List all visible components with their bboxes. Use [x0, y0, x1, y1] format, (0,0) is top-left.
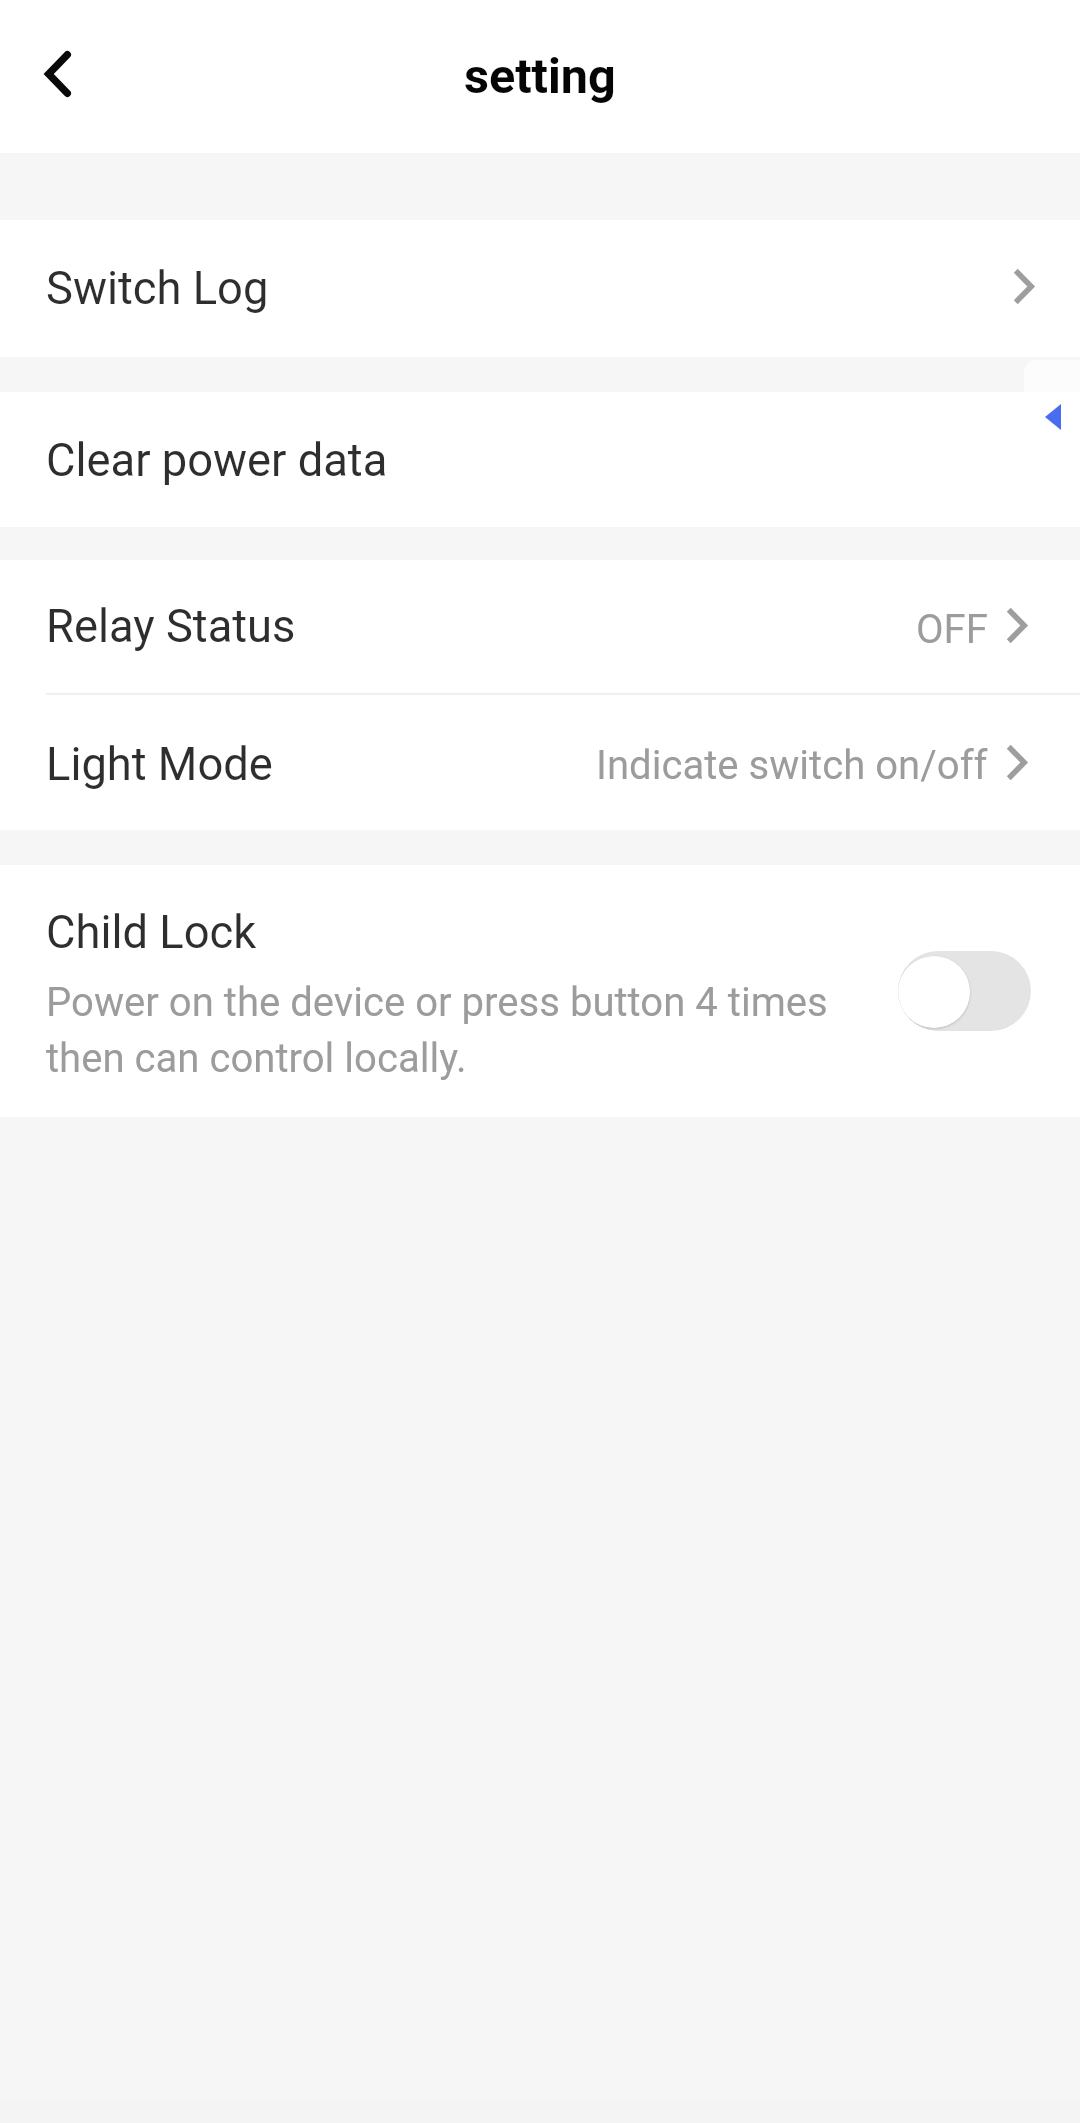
- staticText: Relay Status: [46, 600, 296, 653]
- staticText: Light Mode: [46, 738, 273, 791]
- button[interactable]: Light Mode: [0, 695, 1080, 830]
- button[interactable]: Child Lock: [0, 865, 1080, 1117]
- button[interactable]: Relay Status: [0, 560, 1080, 693]
- staticText: Child Lock: [46, 906, 257, 959]
- button[interactable]: Back: [0, 0, 118, 153]
- button[interactable]: Clear power data: [0, 392, 1080, 527]
- staticText: Switch Log: [46, 262, 269, 315]
- staticText: Clear power data: [46, 434, 388, 487]
- staticText: setting: [464, 48, 616, 105]
- button[interactable]: Switch Log: [0, 220, 1080, 357]
- staticText: Power on the device or press button 4 ti…: [46, 979, 851, 1081]
- staticText: Indicate switch on/off: [596, 742, 988, 789]
- button[interactable]: Child Lock toggle: [898, 951, 1031, 1031]
- staticText: OFF: [916, 606, 988, 653]
